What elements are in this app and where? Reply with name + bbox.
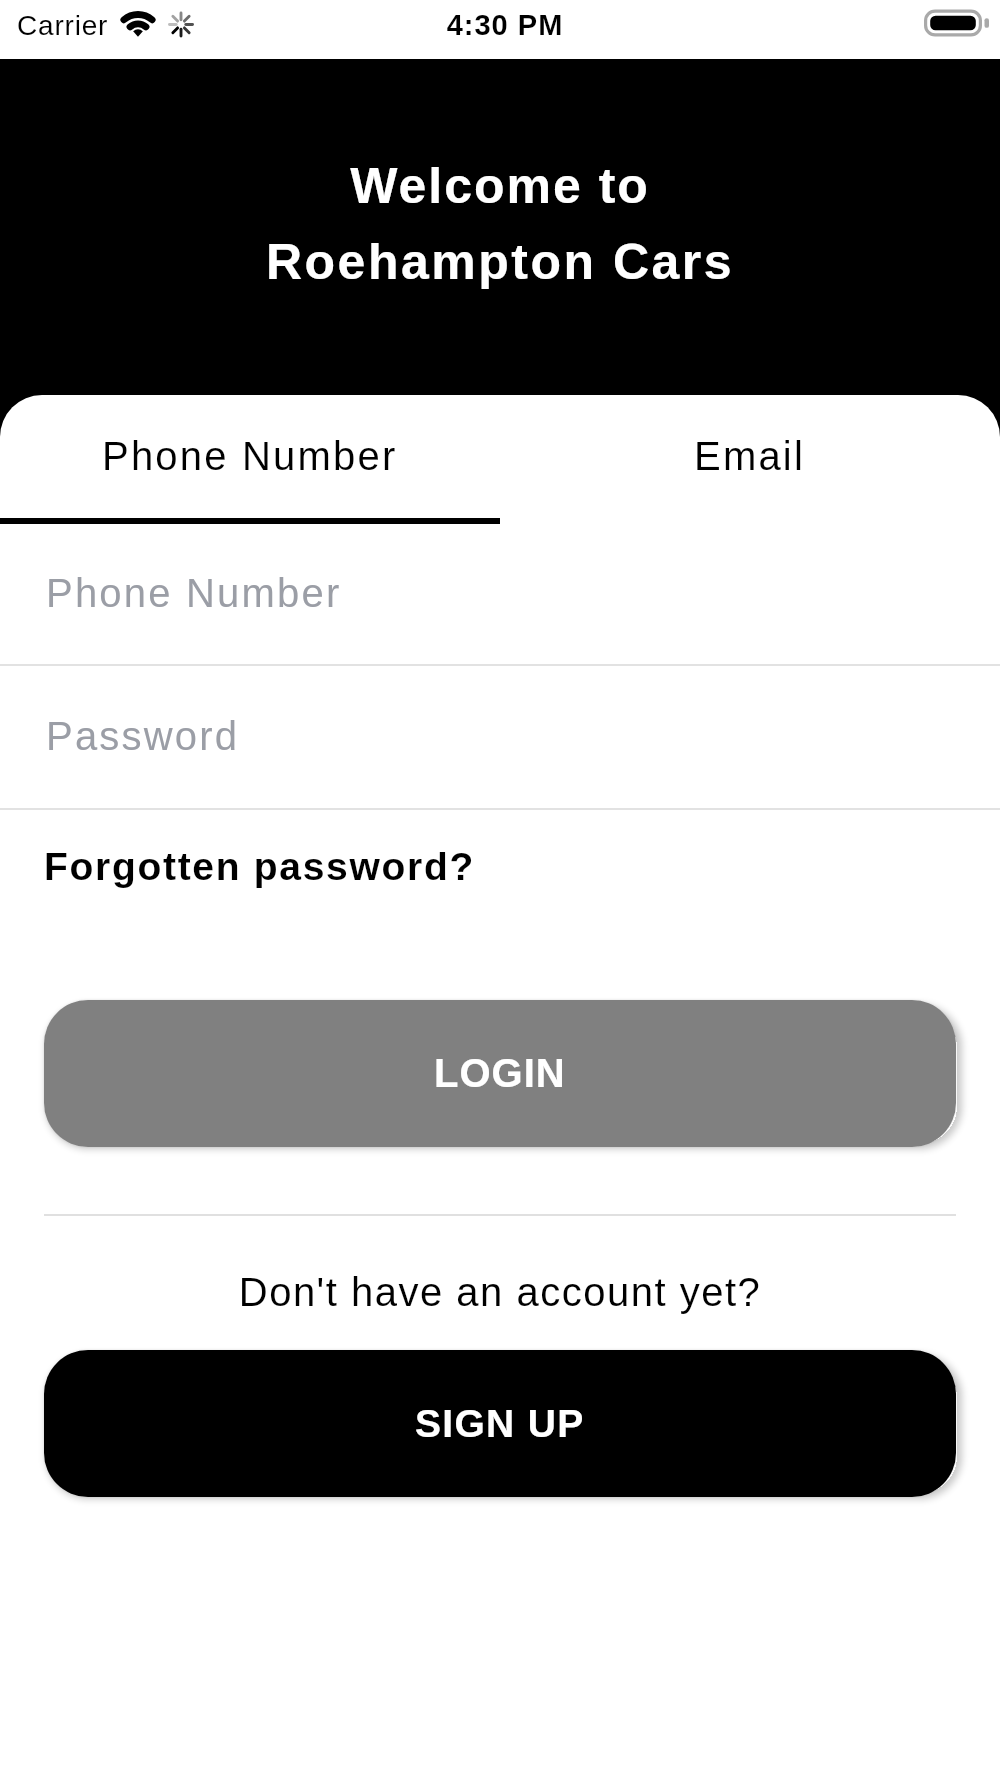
other: Wi-Fi: [121, 11, 155, 36]
button[interactable]: Password: [0, 666, 1000, 808]
staticText: Password: [46, 714, 240, 759]
staticText: 4:30 PM: [5, 9, 1000, 41]
staticText: LOGIN: [434, 1051, 566, 1096]
button[interactable]: Phone Number: [0, 524, 1000, 664]
staticText: Phone Number: [102, 434, 398, 479]
button[interactable]: Forgotten password?: [42, 829, 477, 905]
staticText: Don't have an account yet?: [0, 1270, 1000, 1315]
staticText: Forgotten password?: [44, 845, 475, 889]
staticText: Phone Number: [46, 571, 342, 616]
button[interactable]: Phone Number: [0, 395, 500, 524]
staticText: Email: [694, 434, 806, 479]
other: Loading: [169, 12, 193, 37]
staticText: Roehampton Cars: [0, 234, 1000, 290]
staticText: SIGN UP: [415, 1402, 585, 1446]
staticText: Welcome to: [0, 158, 1000, 214]
button[interactable]: Email: [500, 395, 1000, 524]
staticText: Carrier: [17, 10, 109, 41]
other: Battery full: [924, 7, 990, 39]
button[interactable]: LOGIN: [44, 1000, 956, 1147]
button[interactable]: SIGN UP: [44, 1350, 956, 1497]
